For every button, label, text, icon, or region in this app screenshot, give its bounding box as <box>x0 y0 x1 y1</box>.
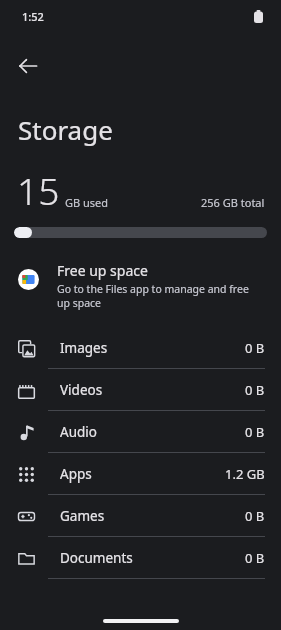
staticText: Videos <box>60 381 103 399</box>
staticText: Free up space <box>57 261 148 280</box>
staticText: Storage <box>18 112 113 147</box>
staticText: Go to the Files app to manage and free u… <box>57 282 257 310</box>
staticText: 0 B <box>245 423 265 441</box>
staticText: GB used <box>65 195 109 210</box>
button[interactable]: Games <box>0 495 281 537</box>
staticText: 15 <box>17 165 60 215</box>
staticText: 0 B <box>245 381 265 399</box>
staticText: Games <box>60 507 105 525</box>
staticText: Audio <box>60 423 97 441</box>
button[interactable]: Audio <box>0 411 281 453</box>
staticText: Apps <box>60 465 92 483</box>
staticText: 1.2 GB <box>225 465 265 483</box>
button[interactable]: Videos <box>0 369 281 411</box>
button[interactable]: Apps <box>0 453 281 495</box>
button[interactable]: Free up space <box>0 258 281 313</box>
staticText: 0 B <box>245 549 265 567</box>
staticText: Images <box>60 339 108 357</box>
staticText: 1:52 <box>22 9 44 24</box>
button[interactable]: Back <box>6 44 50 88</box>
button[interactable]: Documents <box>0 537 281 579</box>
staticText: 0 B <box>245 339 265 357</box>
staticText: 256 GB total <box>201 195 265 210</box>
button[interactable]: Images <box>0 327 281 369</box>
staticText: 0 B <box>245 507 265 525</box>
staticText: Documents <box>60 549 133 567</box>
